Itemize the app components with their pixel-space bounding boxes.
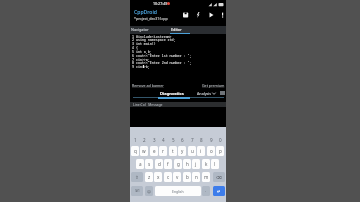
button[interactable]: 5 [169,136,177,143]
button[interactable]: a [136,159,144,169]
button[interactable]: i [197,146,205,156]
staticText: !#1 [135,189,140,193]
staticText: w [142,148,146,154]
button[interactable]: t [169,146,177,156]
staticText: n [195,174,198,180]
staticText: 9 cin>>b; [132,64,150,68]
button[interactable]: Remove ad banner [132,83,164,88]
staticText: 3 int main() [132,41,156,45]
button[interactable]: s [145,159,153,169]
staticText: Editor [171,27,182,32]
staticText: Remove ad banner [132,83,164,88]
staticText: ⇧ [135,175,139,180]
button[interactable]: m [202,172,210,182]
button[interactable]: w [140,146,148,156]
staticText: 4 [162,137,165,143]
staticText: f [167,161,169,167]
staticText: 2 [143,137,146,143]
button[interactable]: v [173,172,181,182]
staticText: z [148,174,151,180]
button[interactable]: j [192,159,200,169]
staticText: m [204,174,209,180]
staticText: 0 [219,137,222,143]
button[interactable]: 0 [216,136,224,143]
staticText: 8 cout<<"Enter 2nd number : "; [132,60,192,64]
staticText: 1 [134,137,137,143]
button[interactable]: Get premium [202,83,225,88]
staticText: ⌫ [216,175,222,180]
staticText: ☺ [147,189,151,193]
button[interactable]: !#1 [131,186,143,196]
button[interactable]: p [216,146,224,156]
button[interactable]: q [131,146,139,156]
button[interactable]: c [164,172,172,182]
button[interactable]: 7 [188,136,196,143]
button[interactable]: 3 [150,136,158,143]
staticText: h [186,161,189,167]
staticText: p [219,148,222,154]
button[interactable]: ↵ [213,186,225,196]
staticText: 7 [191,137,194,143]
button[interactable] [130,26,169,34]
staticText: Get premium [202,83,225,88]
button[interactable]: . [202,186,210,196]
staticText: t [172,148,174,154]
staticText: 1 #include<iostream> [132,34,172,38]
button[interactable]: 2 [140,136,148,143]
staticText: 7 cin>>a; [132,57,150,61]
staticText: a [139,161,142,167]
staticText: CppDroid [134,9,157,16]
staticText: Navigator [131,27,149,32]
staticText: 5 [172,137,175,143]
button[interactable]: f [164,159,172,169]
button[interactable]: n [192,172,200,182]
button[interactable]: 6 [178,136,186,143]
button[interactable]: r [159,146,167,156]
staticText: b [186,174,189,180]
button[interactable]: English [155,186,201,196]
button[interactable]: 1 [131,136,139,143]
button[interactable]: 9 [207,136,215,143]
staticText: *project_dec31f.cpp [134,16,168,21]
button[interactable]: h [183,159,191,169]
button[interactable]: d [155,159,163,169]
staticText: e [153,148,156,154]
button[interactable]: ☺ [145,186,153,196]
staticText: 3 [153,137,156,143]
staticText: 10:27:49 [153,1,168,6]
button[interactable] [170,26,190,34]
button[interactable]: g [174,159,182,169]
staticText: English [172,189,184,194]
staticText: 6 cout<<"Enter 1st number : "; [132,53,192,57]
staticText: c [167,174,170,180]
staticText: Diagnostics [160,91,184,97]
button[interactable]: o [207,146,215,156]
staticText: j [195,161,197,167]
staticText: 5 int a,b; [132,49,152,53]
button[interactable]: k [202,159,210,169]
button[interactable]: 4 [159,136,167,143]
button[interactable]: 8 [197,136,205,143]
staticText: u [191,148,194,154]
button[interactable]: b [183,172,191,182]
staticText: x [157,174,160,180]
staticText: ↵ [217,189,221,194]
button[interactable]: z [145,172,153,182]
button[interactable] [156,90,192,98]
staticText: Analysis [197,91,212,96]
button[interactable]: ⇧ [131,172,143,182]
staticText: Line:Col Message [133,102,163,107]
button[interactable]: ⌫ [213,172,225,182]
staticText: . [205,188,207,194]
staticText: s [148,161,151,167]
button[interactable]: x [154,172,162,182]
button[interactable]: e [150,146,158,156]
button[interactable]: u [188,146,196,156]
staticText: i [200,148,202,154]
staticText: 9 [210,137,213,143]
staticText: g [177,161,180,167]
button[interactable]: y [178,146,186,156]
staticText: o [210,148,213,154]
button[interactable]: l [211,159,219,169]
staticText: r [162,148,164,154]
